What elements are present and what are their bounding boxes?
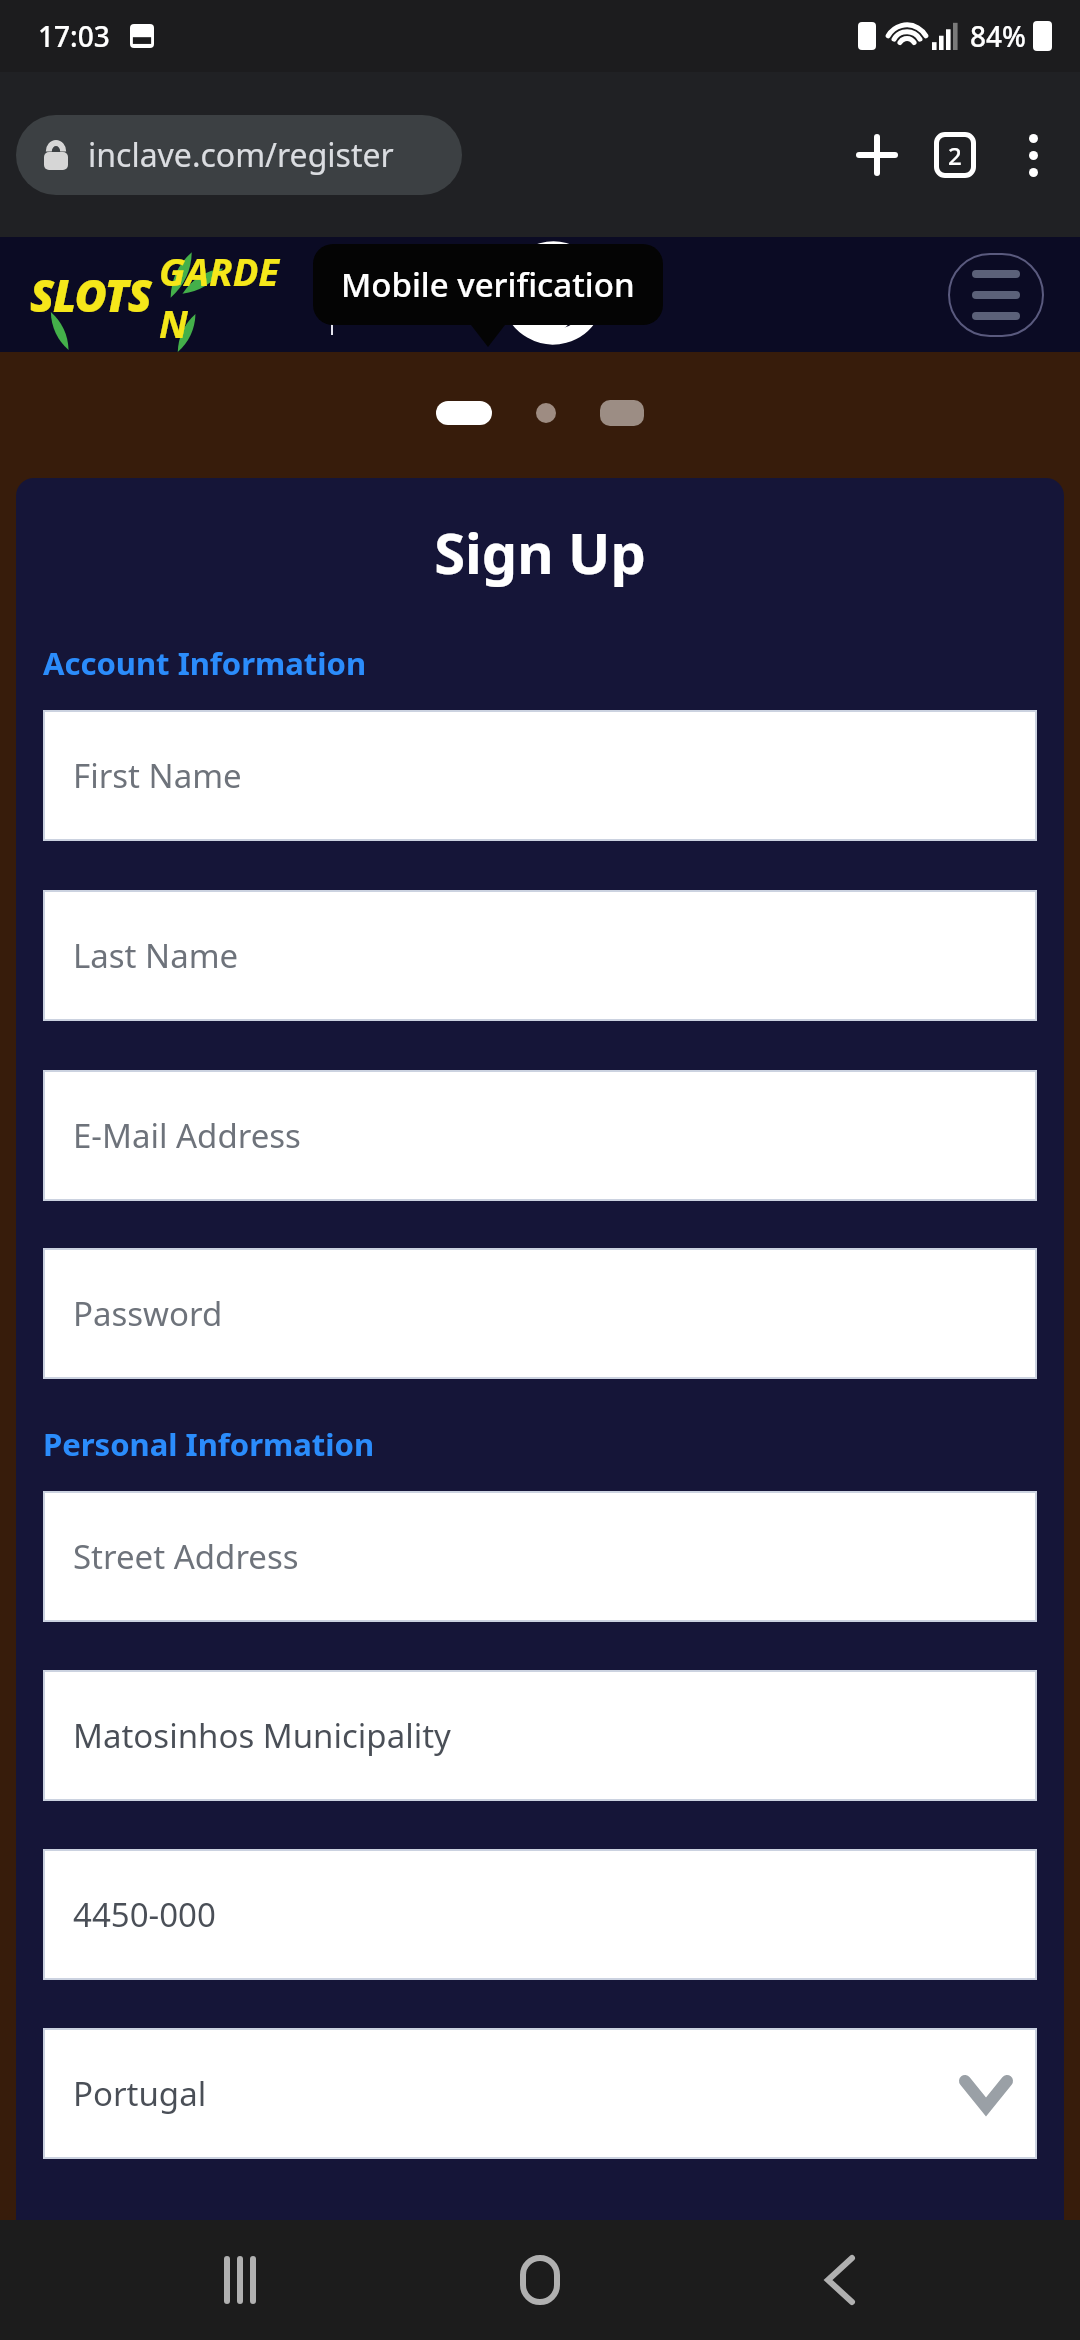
staticText: 2: [948, 139, 962, 172]
button[interactable]: Street Address: [43, 1491, 1037, 1622]
button[interactable]: Matosinhos Municipality: [43, 1670, 1037, 1801]
staticText: E-Mail Address: [73, 1113, 301, 1158]
button[interactable]: Menu: [948, 253, 1044, 337]
staticText: inclave.com/register: [88, 133, 394, 177]
staticText: 17:03: [38, 17, 110, 55]
staticText: 4450-000: [73, 1892, 216, 1937]
button[interactable]: More options: [994, 116, 1072, 194]
staticText: Sign Up: [16, 514, 1064, 590]
staticText: Mobile verification: [341, 262, 635, 307]
staticText: Personal Information: [43, 1423, 375, 1465]
button[interactable]: Last Name: [43, 890, 1037, 1021]
button[interactable]: Back: [780, 2220, 900, 2340]
button[interactable]: Tabs: [916, 116, 994, 194]
staticText: Matosinhos Municipality: [73, 1713, 451, 1758]
button[interactable]: 4450-000: [43, 1849, 1037, 1980]
button[interactable]: Password: [43, 1248, 1037, 1379]
button[interactable]: Portugal: [43, 2028, 1037, 2159]
button[interactable]: Home: [480, 2220, 600, 2340]
staticText: 84%: [970, 17, 1026, 55]
staticText: First Name: [73, 753, 242, 798]
button[interactable]: New tab: [838, 116, 916, 194]
staticText: SLOTS: [30, 265, 151, 325]
staticText: GARDEN: [159, 245, 300, 345]
button[interactable]: E-Mail Address: [43, 1070, 1037, 1201]
button[interactable]: Recent apps: [180, 2220, 300, 2340]
staticText: Password: [73, 1291, 223, 1336]
button[interactable]: First Name: [43, 710, 1037, 841]
button[interactable]: inclave.com/register: [16, 115, 462, 195]
staticText: Last Name: [73, 933, 239, 978]
staticText: Portugal: [73, 2071, 207, 2116]
staticText: by: [461, 298, 489, 332]
staticText: Street Address: [73, 1534, 299, 1579]
staticText: Account Information: [43, 642, 367, 684]
staticText: Powered: [386, 258, 489, 292]
